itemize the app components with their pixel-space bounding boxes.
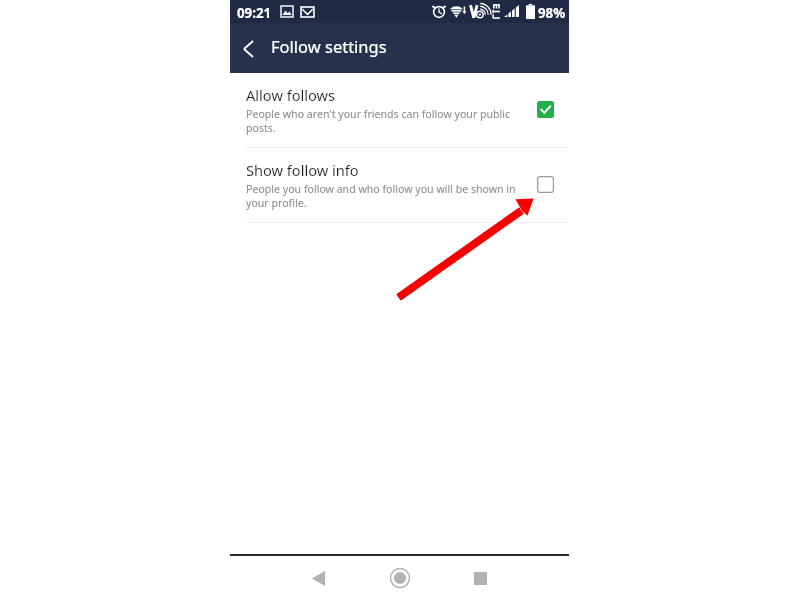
staticText: Show follow info: [246, 160, 359, 180]
button[interactable]: Recents: [462, 556, 498, 600]
staticText: Follow settings: [271, 35, 387, 57]
button[interactable]: Checked: Allow follows: [537, 101, 554, 118]
staticText: 09:21: [237, 4, 272, 22]
button[interactable]: Home: [382, 556, 418, 600]
button[interactable]: Unchecked: Show follow info: [537, 176, 554, 193]
staticText: Allow follows: [246, 85, 336, 105]
staticText: People you follow and who follow you wil…: [246, 182, 520, 210]
staticText: 98%: [538, 4, 566, 22]
button[interactable]: Back: [230, 23, 268, 73]
button[interactable]: Back: [300, 556, 336, 600]
button[interactable]: Show follow info: [230, 147, 569, 222]
staticText: People who aren't your friends can follo…: [246, 107, 520, 135]
button[interactable]: Allow follows: [230, 72, 569, 147]
